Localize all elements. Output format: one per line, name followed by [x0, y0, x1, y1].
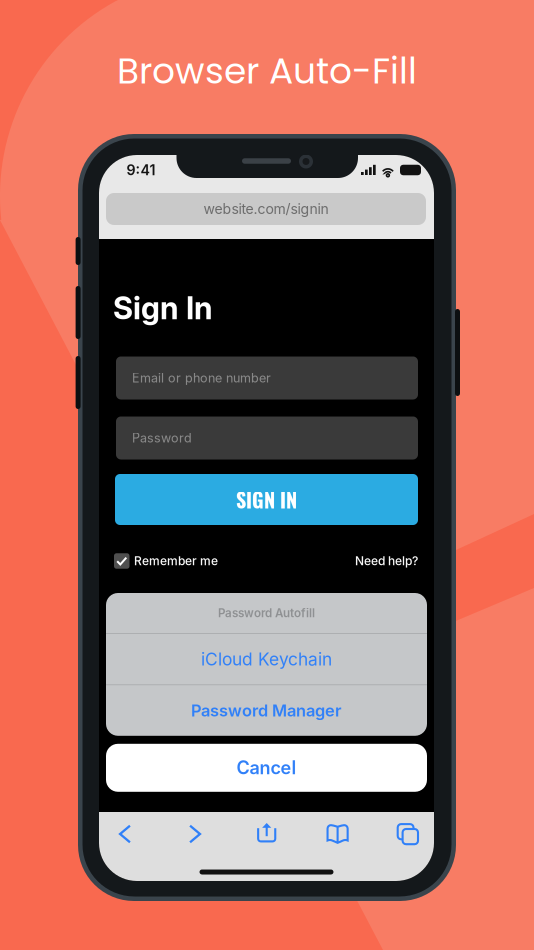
button[interactable]: Share	[235, 812, 299, 856]
staticText: Cancel	[236, 757, 296, 779]
staticText: website.com/signin	[203, 200, 328, 217]
button[interactable]: iCloud Keychain	[106, 634, 427, 684]
staticText: SIGN IN	[236, 485, 297, 514]
staticText: Need help?	[355, 554, 418, 568]
button[interactable]: Need help?	[355, 552, 418, 570]
button[interactable]: Cancel	[106, 744, 427, 792]
staticText: Browser Auto-Fill	[117, 46, 417, 96]
button[interactable]: Forward	[163, 812, 227, 856]
staticText: Remember me	[134, 554, 218, 568]
staticText: Password Manager	[191, 701, 342, 720]
button[interactable]: Back	[93, 812, 157, 856]
staticText: Email or phone number	[132, 370, 271, 386]
button[interactable]: Bookmarks	[306, 812, 370, 856]
button[interactable]: Tabs	[376, 812, 440, 856]
staticText: Password	[132, 430, 192, 446]
button[interactable]: Password Manager	[106, 685, 427, 736]
button[interactable]: Remember me	[114, 552, 218, 570]
staticText: Sign In	[113, 289, 213, 326]
button[interactable]: SIGN IN	[115, 474, 418, 525]
staticText: iCloud Keychain	[201, 649, 332, 670]
staticText: Password Autofill	[218, 606, 315, 620]
staticText: 9:41	[126, 161, 155, 178]
